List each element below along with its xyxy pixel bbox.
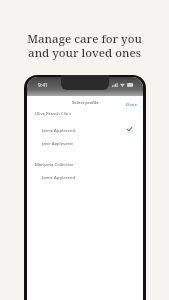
staticText: Jamie Appleseed bbox=[42, 174, 75, 180]
other: Selected bbox=[127, 127, 132, 131]
staticText: Jane Appleseed bbox=[42, 140, 73, 146]
staticText: Olive Branch Clinic bbox=[35, 111, 72, 117]
staticText: Mariposa Collective bbox=[35, 162, 74, 168]
staticText: 9:41 bbox=[38, 82, 48, 89]
button[interactable]: Jane Appleseed bbox=[27, 137, 143, 148]
button[interactable]: Jamie Appleseed bbox=[27, 171, 143, 182]
staticText: Manage care for you bbox=[27, 31, 142, 47]
staticText: Select profile bbox=[72, 99, 99, 105]
staticText: Done bbox=[126, 101, 137, 107]
staticText: and your loved ones bbox=[28, 45, 141, 61]
staticText: Jamie Appleseed bbox=[42, 127, 75, 133]
button[interactable]: Done bbox=[120, 98, 143, 110]
button[interactable]: Jamie Appleseed bbox=[27, 124, 143, 135]
